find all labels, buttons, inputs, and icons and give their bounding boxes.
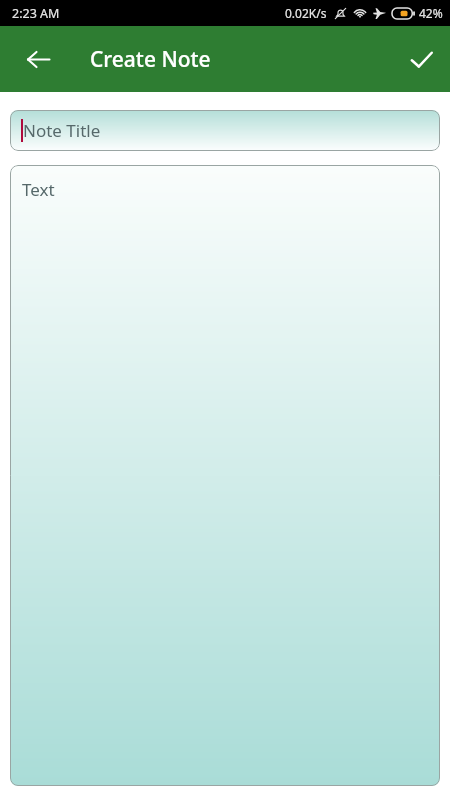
staticText: Create Note xyxy=(90,45,211,74)
staticText: Text xyxy=(22,178,55,201)
button[interactable]: Save note xyxy=(397,35,445,83)
staticText: 2:23 AM xyxy=(12,5,60,22)
button[interactable]: Back xyxy=(14,35,62,83)
staticText: 42% xyxy=(419,5,443,21)
staticText: 0.02K/s xyxy=(285,5,327,21)
button[interactable]: Text xyxy=(10,165,440,786)
staticText: Note Title xyxy=(23,119,101,142)
button[interactable]: Note Title xyxy=(10,110,440,151)
